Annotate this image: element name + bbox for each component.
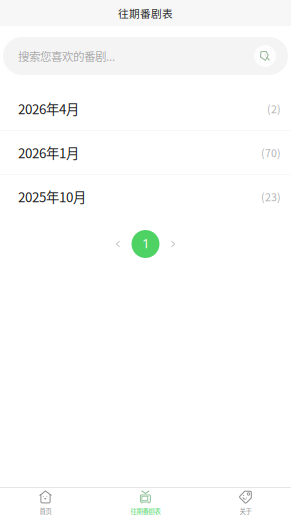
button[interactable]: 2025年10月 bbox=[0, 175, 291, 218]
staticText: 搜索您喜欢的番剧... bbox=[18, 48, 115, 64]
staticText: (23) bbox=[261, 189, 281, 204]
button[interactable]: Previous page bbox=[104, 230, 131, 258]
button[interactable]: Search bbox=[254, 45, 276, 67]
button[interactable]: 首页 bbox=[0, 488, 91, 518]
staticText: (2) bbox=[267, 101, 281, 116]
staticText: 往期番剧表 bbox=[130, 506, 160, 516]
button[interactable]: 1 bbox=[131, 230, 159, 258]
button[interactable]: Next page bbox=[159, 230, 186, 258]
staticText: 2026年1月 bbox=[18, 143, 79, 162]
button[interactable]: 2026年1月 bbox=[0, 131, 291, 174]
staticText: (70) bbox=[261, 145, 281, 160]
staticText: 关于 bbox=[239, 506, 251, 516]
button[interactable]: 2026年4月 bbox=[0, 87, 291, 130]
button[interactable]: 往期番剧表 bbox=[100, 488, 191, 518]
staticText: 2025年10月 bbox=[18, 187, 86, 206]
staticText: 2026年4月 bbox=[18, 99, 79, 118]
staticText: 1 bbox=[143, 237, 148, 251]
staticText: 往期番剧表 bbox=[118, 5, 173, 21]
button[interactable]: 关于 bbox=[200, 488, 291, 518]
staticText: 首页 bbox=[39, 506, 51, 516]
